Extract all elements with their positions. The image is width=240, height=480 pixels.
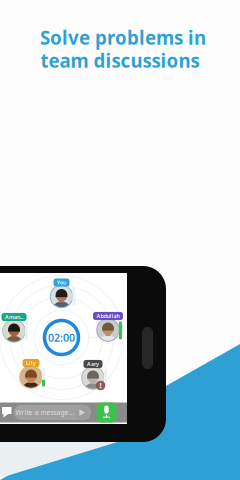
- staticText: Lily: [26, 359, 36, 367]
- button[interactable]: You: [0, 273, 127, 424]
- staticText: Write a message...: [15, 408, 74, 417]
- staticText: Abdullah: [96, 312, 119, 320]
- button[interactable]: Aary: [0, 273, 127, 424]
- button[interactable]: Abdullah: [0, 273, 127, 424]
- staticText: Aary: [87, 360, 99, 368]
- button[interactable]: Chats: [0, 273, 127, 424]
- button[interactable]: Aman...: [0, 273, 127, 424]
- staticText: You: [57, 279, 66, 286]
- staticText: team discussions: [40, 48, 199, 73]
- button[interactable]: Send: [75, 406, 88, 419]
- staticText: Solve problems in: [40, 25, 206, 50]
- staticText: Aman...: [5, 313, 23, 321]
- staticText: 02:00: [48, 330, 75, 345]
- button[interactable]: Lily: [0, 273, 127, 424]
- button[interactable]: Hold to talk: [96, 402, 116, 422]
